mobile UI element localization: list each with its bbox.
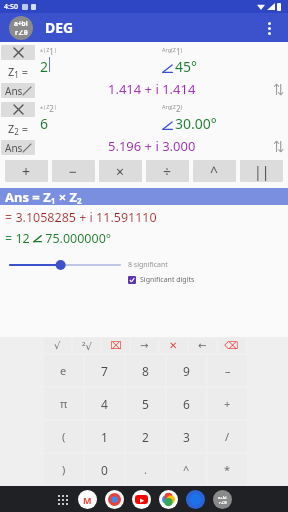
staticText: Significant digits (140, 275, 195, 285)
staticText: ^ (210, 162, 219, 181)
button[interactable]: Calculator (213, 490, 232, 509)
staticText: . (144, 462, 147, 477)
staticText: ÷ (163, 162, 172, 181)
button[interactable]: More options (256, 15, 282, 41)
staticText: e (60, 363, 67, 378)
button[interactable]: key + (208, 388, 247, 419)
staticText: 7 (101, 363, 108, 379)
button[interactable]: Messages (186, 490, 205, 509)
staticText: * (224, 462, 231, 477)
staticText: DEG (45, 18, 74, 37)
button[interactable]: ^ (193, 160, 236, 182)
button[interactable]: key . (126, 454, 165, 485)
button[interactable]: Digits slider (10, 257, 120, 273)
button[interactable]: − (52, 160, 95, 182)
button[interactable]: Use answer for Z2 (1, 140, 35, 155)
button[interactable]: key 4 (85, 388, 124, 419)
button[interactable]: key 1 (85, 421, 124, 452)
staticText: ( (62, 429, 66, 444)
button[interactable]: Swap (268, 79, 288, 99)
staticText: 4 (101, 396, 108, 412)
button[interactable]: key ( (44, 421, 83, 452)
staticText: 6 (40, 114, 49, 133)
button[interactable]: key ^ (167, 454, 206, 485)
button[interactable]: Photos (159, 490, 178, 509)
staticText: π (60, 396, 68, 411)
button[interactable]: key e (44, 355, 83, 386)
button[interactable]: Swap (268, 136, 288, 156)
staticText: ⌧ (110, 340, 122, 352)
button[interactable]: Clear Z2 (1, 102, 35, 117)
button[interactable]: ÷ (146, 160, 189, 182)
button[interactable]: key ⌫ (218, 338, 245, 353)
staticText: 1.414 + i 1.414 (108, 80, 196, 98)
button[interactable]: key ) (44, 454, 83, 485)
button[interactable]: Clear Z1 (1, 45, 35, 60)
button[interactable]: YouTube (132, 490, 151, 509)
staticText: ^ (183, 462, 190, 477)
staticText: 2 (142, 429, 149, 445)
staticText: × (116, 162, 125, 181)
staticText: Arg(Z1) (162, 46, 183, 57)
staticText: 1 (101, 429, 108, 445)
button[interactable]: key ⌧ (102, 338, 129, 353)
button[interactable]: key 8 (126, 355, 165, 386)
staticText: ✕ (169, 340, 178, 352)
button[interactable]: key 7 (85, 355, 124, 386)
button[interactable]: key / (208, 421, 247, 452)
button[interactable]: Use answer for Z1 (1, 83, 35, 98)
staticText: ±|Z1| (40, 46, 57, 57)
staticText: / (225, 429, 230, 444)
staticText: 0 (101, 462, 108, 478)
staticText: Ans = Z1 × Z2 (5, 188, 82, 205)
staticText: + (224, 396, 231, 411)
button[interactable]: App icon (9, 16, 33, 40)
button[interactable]: key ✕ (160, 338, 187, 353)
staticText: Z1 = (8, 64, 29, 80)
staticText: = 3.1058285 + i 11.591110 (5, 209, 157, 226)
staticText: + (22, 162, 31, 181)
staticText: 45° (175, 57, 198, 76)
button[interactable]: key √ (44, 338, 71, 353)
button[interactable]: Chrome (105, 490, 124, 509)
button[interactable]: Significant digits (128, 275, 195, 285)
staticText: 4:50 (4, 2, 18, 12)
staticText: M (83, 494, 92, 506)
button[interactable]: Gmail (78, 490, 97, 509)
button[interactable]: key 0 (85, 454, 124, 485)
button[interactable]: key 3 (167, 421, 206, 452)
staticText: 5 (142, 396, 149, 412)
staticText: ) (62, 462, 66, 477)
button[interactable]: || (240, 160, 283, 182)
staticText: 75.000000° (42, 230, 112, 247)
staticText: ⌫ (224, 340, 239, 352)
staticText: 30.00° (175, 114, 217, 133)
button[interactable]: key * (208, 454, 247, 485)
button[interactable]: + (5, 160, 48, 182)
button[interactable]: × (99, 160, 142, 182)
staticText: 3 (183, 429, 190, 445)
button[interactable]: key 2 (126, 421, 165, 452)
button[interactable]: key ²√ (73, 338, 100, 353)
button[interactable]: key 5 (126, 388, 165, 419)
button[interactable]: key π (44, 388, 83, 419)
staticText: 2 (40, 57, 49, 76)
button[interactable]: key 6 (167, 388, 206, 419)
staticText: Arg(Z2) (162, 103, 183, 114)
staticText: ²√ (82, 339, 92, 353)
staticText: 5.196 + i 3.000 (108, 137, 196, 155)
staticText: 6 (183, 396, 190, 412)
button[interactable]: key → (131, 338, 158, 353)
staticText: – (225, 363, 231, 378)
button[interactable]: key 9 (167, 355, 206, 386)
button[interactable]: All apps (56, 493, 70, 507)
staticText: Ans (5, 84, 23, 98)
staticText: 8 significant (128, 260, 168, 270)
staticText: ±|Z2| (40, 103, 57, 114)
staticText: ← (198, 340, 207, 352)
staticText: r∠θ (15, 28, 28, 37)
staticText: = 12 (5, 230, 33, 247)
button[interactable]: key – (208, 355, 247, 386)
button[interactable]: key ← (189, 338, 216, 353)
staticText: r∠θ (219, 500, 227, 505)
